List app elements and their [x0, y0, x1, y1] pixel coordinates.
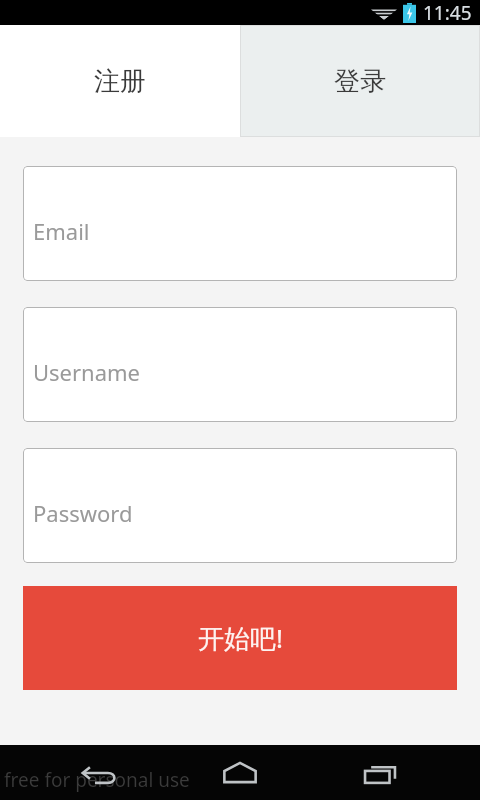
button[interactable]: 开始吧!	[23, 586, 457, 690]
button[interactable]: Back	[60, 745, 140, 800]
button[interactable]: Username	[23, 307, 457, 422]
staticText: free for personal use	[4, 767, 190, 793]
button[interactable]: Password	[23, 448, 457, 563]
button[interactable]: Home	[200, 745, 280, 800]
staticText: 11:45	[423, 0, 472, 25]
staticText: 登录	[334, 65, 386, 98]
button[interactable]: Recent apps	[340, 745, 420, 800]
button[interactable]: 注册	[0, 25, 240, 137]
staticText: 注册	[94, 65, 146, 98]
staticText: Password	[33, 498, 133, 528]
staticText: Username	[33, 357, 141, 387]
staticText: 开始吧!	[198, 620, 283, 656]
button[interactable]: 登录	[240, 25, 480, 137]
staticText: Email	[33, 216, 90, 246]
button[interactable]: Email	[23, 166, 457, 281]
